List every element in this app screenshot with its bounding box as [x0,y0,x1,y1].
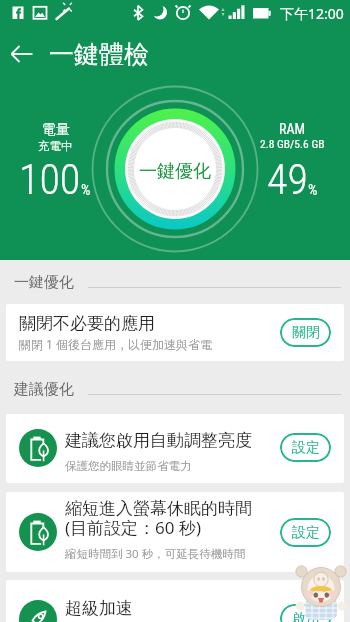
staticText: RAM [279,121,306,137]
staticText: (目前設定：60 秒) [65,516,202,539]
staticText: 啟用 [292,610,320,622]
staticText: 設定 [292,524,320,542]
button[interactable]: 縮短進入螢幕休眠的時間 [6,492,344,572]
staticText: 充電中 [38,139,73,153]
staticText: 100 [19,155,81,204]
staticText: 建議優化 [14,380,74,399]
staticText: 建議您啟用自動調整亮度 [65,430,252,451]
staticText: 縮短進入螢幕休眠的時間 [65,498,252,519]
button[interactable]: 建議您啟用自動調整亮度 [6,414,344,483]
staticText: % [308,181,318,199]
staticText: 一鍵體檢 [49,39,149,70]
staticText: % [81,181,91,199]
staticText: 2.8 GB/5.6 GB [260,137,325,150]
button[interactable]: 啟用 [280,604,331,622]
button[interactable]: 一鍵優化 [139,160,211,183]
staticText: 49 [267,155,308,204]
button[interactable]: 關閉 [280,318,331,347]
button[interactable]: Back [0,32,44,76]
staticText: 超級加速 [65,598,133,619]
staticText: 關閉不必要的應用 [19,313,155,334]
staticText: 關閉 1 個後台應用，以便加速與省電 [19,336,213,352]
staticText: 一鍵優化 [14,273,74,292]
staticText: 縮短時間到 30 秒，可延長待機時間 [65,546,246,562]
staticText: 設定 [292,439,320,457]
button[interactable]: 設定 [280,433,331,462]
staticText: 關閉 [292,324,320,342]
staticText: 電量 [42,121,70,139]
button[interactable]: 設定 [280,518,331,547]
staticText: 下午12:00 [280,4,344,23]
staticText: 保護您的眼睛並節省電力 [65,459,192,473]
button[interactable]: 關閉不必要的應用 [6,304,344,361]
button[interactable]: 超級加速 [6,580,344,622]
